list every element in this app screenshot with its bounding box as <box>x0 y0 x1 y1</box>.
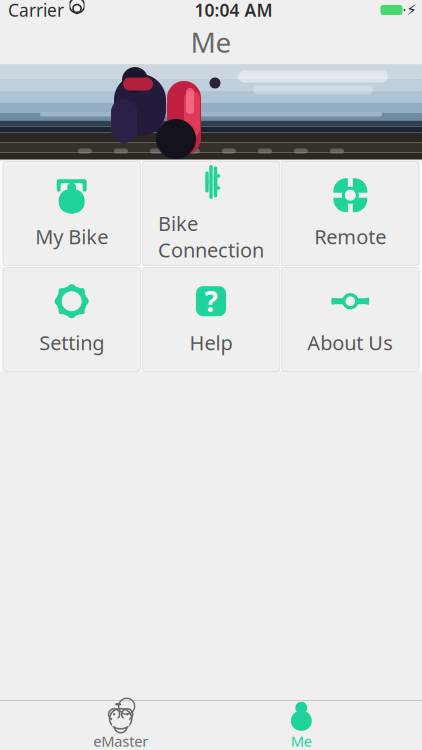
button[interactable]: My Bike <box>3 161 140 265</box>
staticText: Carrier <box>8 0 64 21</box>
button[interactable]: Me <box>241 701 361 749</box>
staticText: eMaster <box>93 731 148 750</box>
staticText: Me <box>291 731 312 750</box>
staticText: ⚡︎ <box>406 2 416 18</box>
staticText: ? <box>204 283 217 320</box>
staticText: About Us <box>307 329 393 356</box>
button[interactable]: ? <box>142 267 280 371</box>
staticText: Help <box>189 329 232 356</box>
button[interactable]: Setting <box>3 267 140 371</box>
staticText: My Bike <box>35 223 108 250</box>
staticText: 10:04 AM <box>194 0 272 21</box>
button[interactable]: Remote <box>282 161 419 265</box>
staticText: Setting <box>39 329 104 356</box>
button[interactable]: eMaster <box>61 701 181 749</box>
button[interactable]: Bike Connection <box>142 161 280 265</box>
staticText: Remote <box>314 223 386 250</box>
staticText: Bike Connection <box>158 210 264 263</box>
button[interactable]: About Us <box>282 267 419 371</box>
staticText: Me <box>190 23 231 61</box>
